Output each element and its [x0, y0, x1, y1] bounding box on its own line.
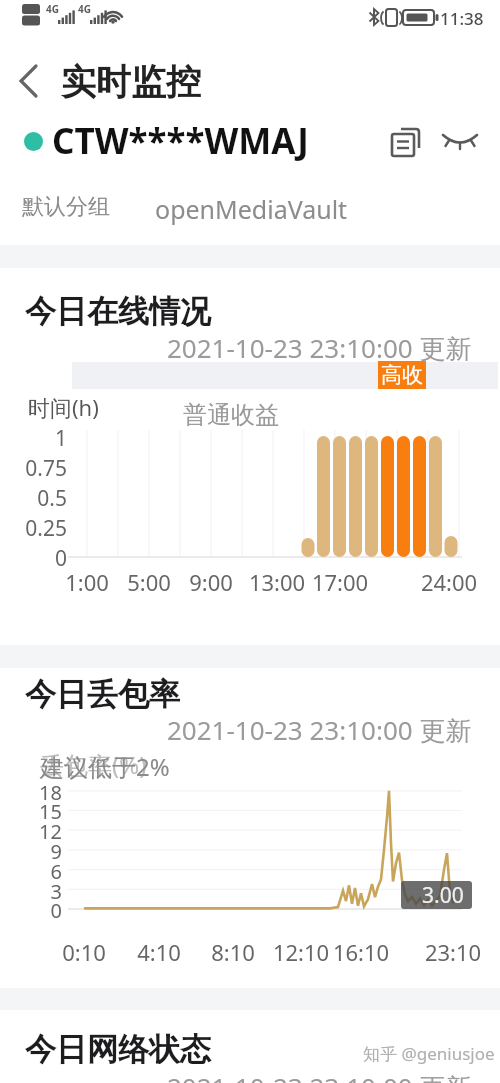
staticText: 23:10: [413, 937, 493, 967]
staticText: 0: [10, 897, 62, 924]
staticText: 今日在线情况: [25, 292, 211, 331]
staticText: 默认分组: [22, 193, 110, 221]
button[interactable]: [440, 124, 484, 164]
staticText: 3: [10, 878, 62, 905]
staticText: 3.00: [422, 881, 464, 909]
staticText: 0.25: [15, 514, 67, 543]
button[interactable]: 3.00: [401, 881, 472, 909]
staticText: 4G: [78, 2, 91, 16]
button[interactable]: 高收: [378, 361, 426, 389]
staticText: 0.5: [15, 484, 67, 513]
staticText: 4:10: [119, 937, 199, 967]
staticText: 12:10: [261, 937, 341, 967]
staticText: 12: [10, 818, 62, 845]
staticText: 今日丢包率: [25, 675, 180, 714]
staticText: 普通收益: [183, 400, 279, 430]
staticText: 实时监控: [61, 60, 201, 104]
staticText: 建议低于2%: [40, 750, 170, 783]
staticText: 2021-10-23 23:10:00 更新: [167, 330, 472, 366]
staticText: 13:00: [237, 567, 317, 597]
staticText: 2021-10-23 23:10:00 更新: [167, 712, 472, 748]
staticText: 知乎 @geniusjoe: [363, 1042, 495, 1065]
staticText: 4G: [46, 2, 59, 16]
staticText: 17:00: [300, 567, 380, 597]
staticText: 6: [10, 858, 62, 885]
staticText: 丢包率(%): [40, 748, 147, 781]
staticText: 高收: [381, 362, 423, 388]
staticText: 2021-10-23 23:10:00 更新: [167, 1069, 472, 1083]
staticText: 11:38: [440, 7, 484, 30]
staticText: openMediaVault: [155, 192, 348, 226]
staticText: 0:10: [44, 937, 124, 967]
button[interactable]: [10, 60, 54, 104]
staticText: 今日网络状态: [25, 1030, 211, 1069]
staticText: 8:10: [193, 937, 273, 967]
staticText: 15: [10, 798, 62, 825]
staticText: 9: [10, 838, 62, 865]
staticText: 0.75: [15, 454, 67, 483]
staticText: CTW****WMAJ: [52, 117, 309, 165]
staticText: 24:00: [409, 567, 489, 597]
staticText: 18: [10, 779, 62, 806]
staticText: 16:10: [321, 937, 401, 967]
button[interactable]: [386, 124, 426, 164]
staticText: 5:00: [109, 567, 189, 597]
staticText: 时间(h): [28, 392, 99, 422]
staticText: 1: [15, 424, 67, 453]
staticText: 9:00: [171, 567, 251, 597]
staticText: 1:00: [47, 567, 127, 597]
staticText: 0: [15, 544, 67, 573]
